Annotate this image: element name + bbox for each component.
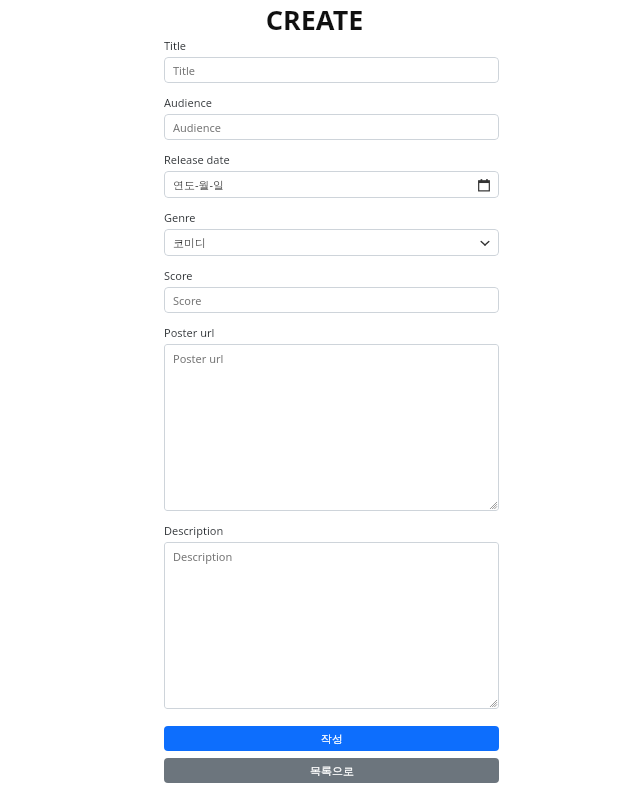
staticText: Poster url — [164, 325, 215, 340]
button[interactable]: Score — [164, 287, 499, 313]
button[interactable]: Open genre list — [479, 237, 491, 249]
staticText: Score — [164, 268, 193, 283]
button[interactable]: Poster url — [164, 344, 499, 511]
staticText: Poster url — [173, 351, 224, 366]
button[interactable]: 연도-월-일 — [164, 171, 499, 198]
button[interactable]: Audience — [164, 114, 499, 140]
staticText: 코미디 — [173, 236, 206, 250]
staticText: Description — [173, 549, 233, 564]
button[interactable]: Title — [164, 57, 499, 83]
staticText: 목록으로 — [310, 764, 354, 778]
staticText: Description — [164, 523, 224, 538]
staticText: Title — [164, 38, 186, 53]
staticText: CREATE — [0, 1, 629, 38]
staticText: Release date — [164, 152, 230, 167]
staticText: Genre — [164, 210, 196, 225]
button[interactable]: Choose date — [477, 178, 491, 192]
staticText: Title — [173, 63, 195, 78]
button[interactable]: Description — [164, 542, 499, 709]
staticText: Score — [173, 293, 202, 308]
staticText: Audience — [164, 95, 212, 110]
staticText: Audience — [173, 120, 221, 135]
staticText: 작성 — [321, 732, 343, 746]
button[interactable]: 코미디 — [164, 229, 499, 256]
staticText: 연도-월-일 — [173, 177, 225, 192]
button[interactable]: 작성 — [164, 726, 499, 751]
button[interactable]: 목록으로 — [164, 758, 499, 783]
